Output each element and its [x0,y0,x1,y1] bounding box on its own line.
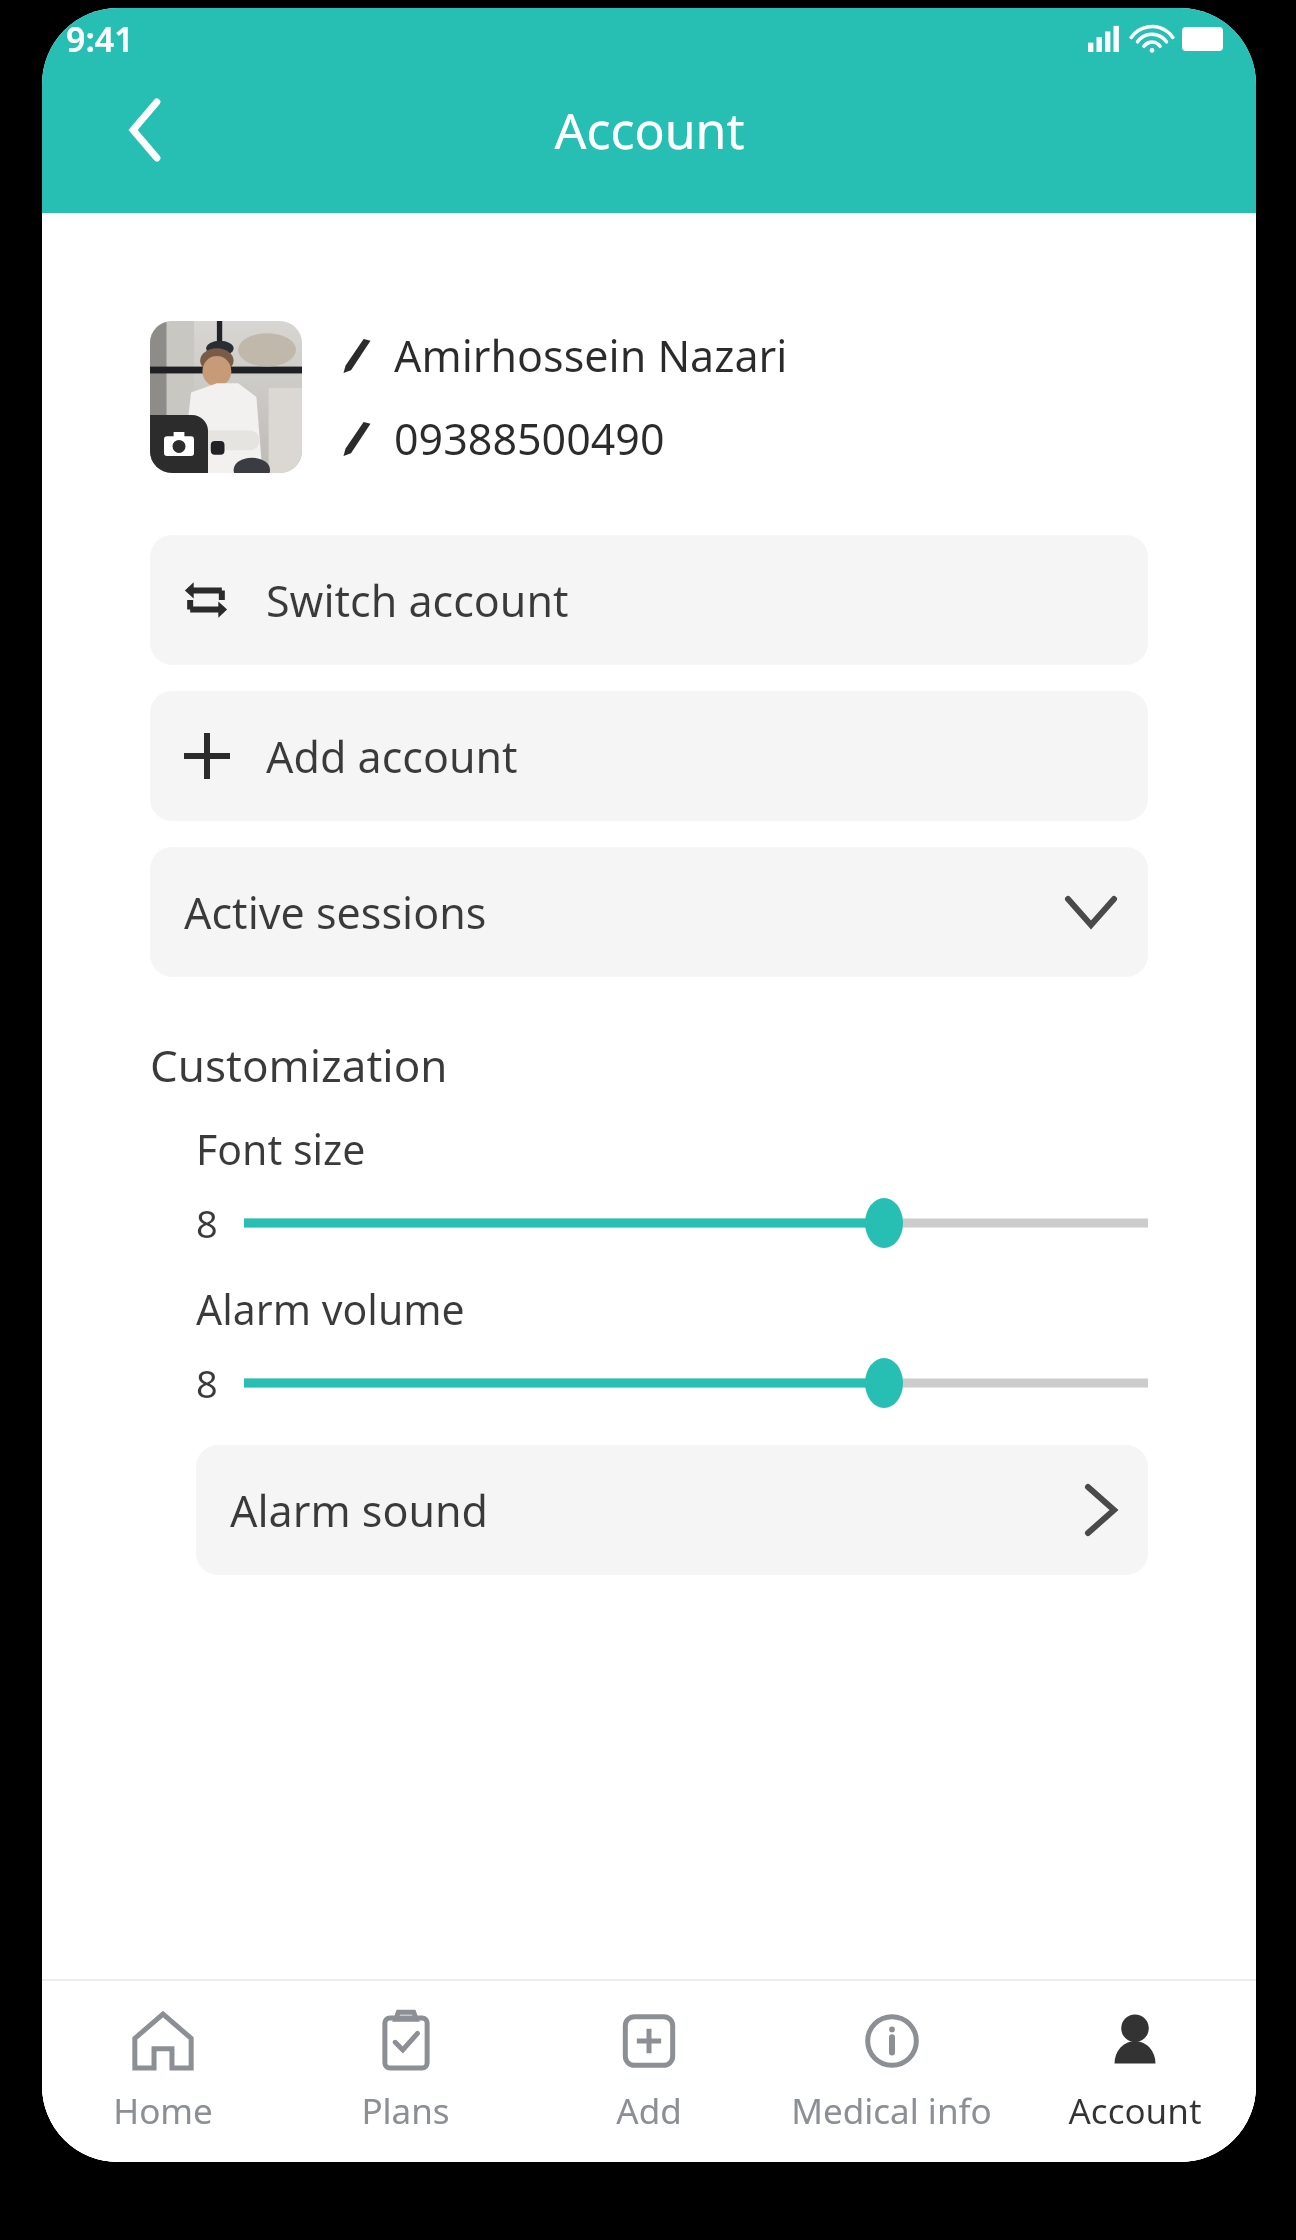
button[interactable]: Add account [150,691,1148,821]
staticText: 9:41 [66,16,134,62]
staticText: Active sessions [184,883,487,942]
staticText: Plans [361,2087,450,2135]
button[interactable]: Switch account [150,535,1148,665]
button[interactable]: Home [42,1981,284,2162]
button[interactable]: Account [1013,1981,1256,2162]
staticText: Add account [266,727,518,786]
staticText: 09388500490 [394,409,665,468]
button[interactable]: Alarm volume [244,1351,1148,1415]
button[interactable]: 09388500490 [342,409,665,468]
button[interactable]: Back [98,82,194,178]
staticText: Font size [196,1121,366,1177]
button[interactable]: Alarm sound [196,1445,1148,1575]
button[interactable]: Medical info [770,1981,1013,2162]
staticText: Customization [150,1035,448,1095]
staticText: Medical info [791,2087,992,2135]
staticText: Account [1068,2087,1202,2135]
staticText: Amirhossein Nazari [394,326,788,385]
staticText: Alarm sound [230,1481,489,1540]
staticText: 8 [196,1357,218,1409]
staticText: Home [113,2087,213,2135]
button[interactable]: Font size [244,1191,1148,1255]
button[interactable]: Change profile photo [150,321,302,473]
staticText: Account [554,96,745,164]
button[interactable]: Add [527,1981,770,2162]
button[interactable]: Plans [284,1981,527,2162]
button[interactable]: Active sessions [150,847,1148,977]
staticText: Add [616,2087,682,2135]
staticText: Alarm volume [196,1281,465,1337]
staticText: Switch account [266,571,569,630]
staticText: 8 [196,1197,218,1249]
button[interactable]: Amirhossein Nazari [342,326,788,385]
